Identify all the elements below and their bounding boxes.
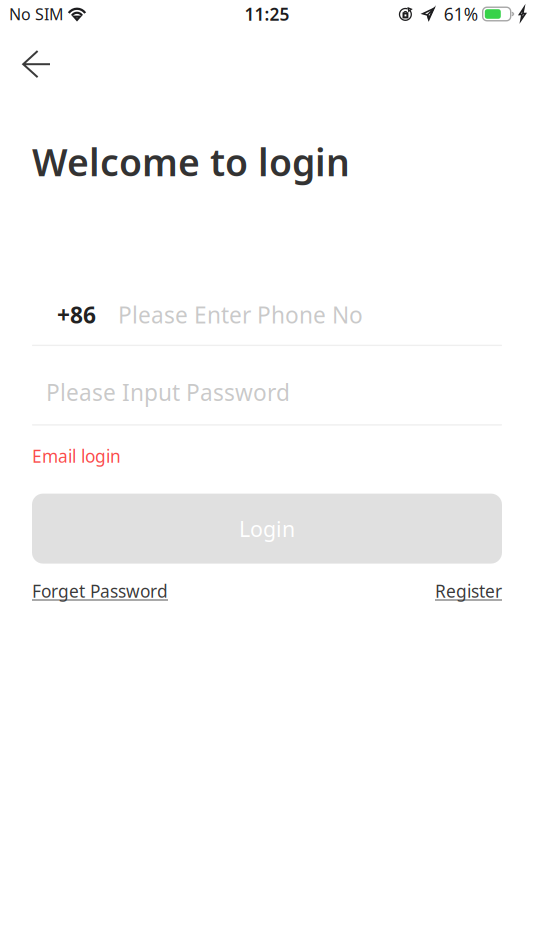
staticText: 61%	[444, 2, 478, 25]
staticText: +86	[57, 300, 96, 330]
staticText: 11:25	[244, 2, 289, 25]
staticText: No SIM	[9, 3, 64, 25]
staticText: Welcome to login	[32, 137, 350, 187]
button[interactable]: Register	[435, 577, 502, 606]
button[interactable]: Email login	[0, 441, 121, 472]
button[interactable]: Forget Password	[32, 577, 168, 606]
staticText: Email login	[32, 445, 121, 468]
button[interactable]: Back	[0, 28, 68, 90]
staticText: Please Input Password	[46, 377, 290, 407]
staticText: Register	[435, 580, 502, 603]
button[interactable]: Login	[0, 494, 502, 564]
staticText: Please Enter Phone No	[118, 300, 363, 330]
staticText: Forget Password	[32, 580, 168, 603]
staticText: Login	[239, 514, 295, 543]
